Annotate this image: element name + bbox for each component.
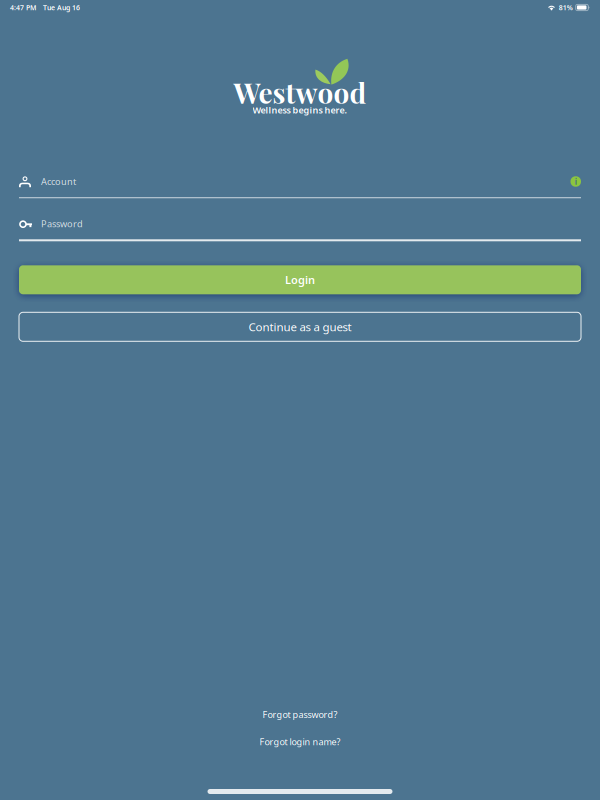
staticText: Forgot login name?	[259, 736, 340, 748]
staticText: Wellness begins here.	[252, 104, 347, 116]
staticText: 81%	[559, 3, 573, 12]
staticText: i	[575, 176, 577, 187]
button[interactable]: Account information	[570, 176, 581, 187]
button[interactable]: Forgot password?	[252, 705, 347, 724]
button[interactable]: Continue as a guest	[19, 312, 581, 341]
staticText: Continue as a guest	[248, 319, 351, 335]
staticText: Password	[41, 217, 83, 230]
staticText: Forgot password?	[262, 708, 337, 721]
staticText: Westwood	[233, 73, 366, 111]
staticText: Tue Aug 16	[43, 3, 80, 12]
staticText: Account	[41, 175, 76, 188]
button[interactable]: Login	[19, 265, 581, 294]
staticText: Login	[285, 272, 315, 287]
staticText: 4:47 PM	[10, 3, 36, 12]
button[interactable]: Forgot login name?	[249, 733, 350, 751]
